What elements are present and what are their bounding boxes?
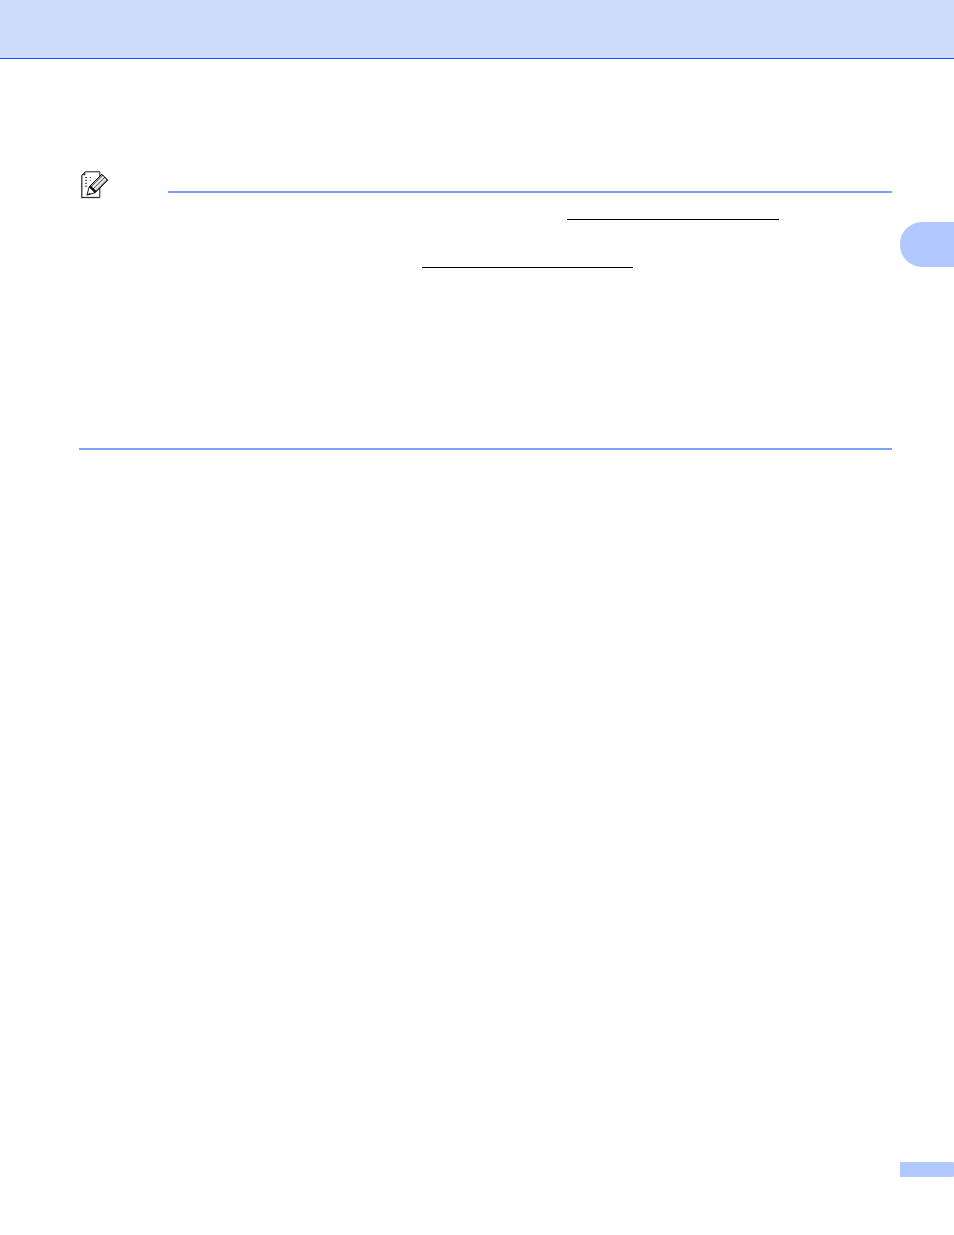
button[interactable]: Note bbox=[81, 171, 108, 199]
button[interactable]: Chapter tab bbox=[900, 222, 954, 267]
